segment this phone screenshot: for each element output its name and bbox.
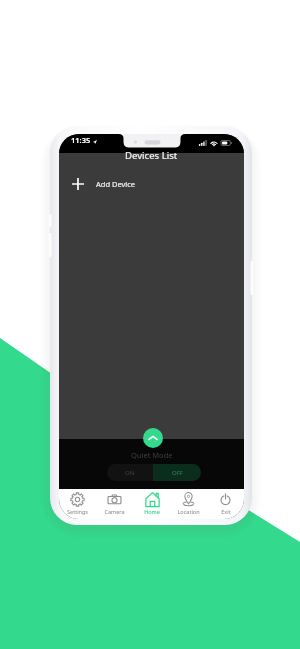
staticText: OFF <box>172 469 183 477</box>
button[interactable]: Exit <box>207 489 244 519</box>
staticText: Devices List <box>125 149 178 162</box>
button[interactable]: Home <box>133 489 170 519</box>
staticText: Camera <box>104 508 125 515</box>
button[interactable]: Location <box>170 489 207 519</box>
button[interactable]: ON <box>107 464 153 481</box>
staticText: Location <box>177 508 200 515</box>
button[interactable]: Add Device <box>59 173 244 195</box>
staticText: Quiet Mode <box>131 450 173 460</box>
button[interactable]: Camera <box>96 489 133 519</box>
button[interactable]: OFF <box>153 464 201 481</box>
staticText: Add Device <box>96 179 136 189</box>
staticText: Settings <box>67 508 88 515</box>
button[interactable]: Expand quiet mode <box>143 428 163 448</box>
staticText: Home <box>144 508 160 515</box>
button[interactable]: Settings <box>59 489 96 519</box>
staticText: 11:35 <box>71 135 91 145</box>
staticText: ON <box>125 469 135 477</box>
staticText: Exit <box>221 508 231 515</box>
